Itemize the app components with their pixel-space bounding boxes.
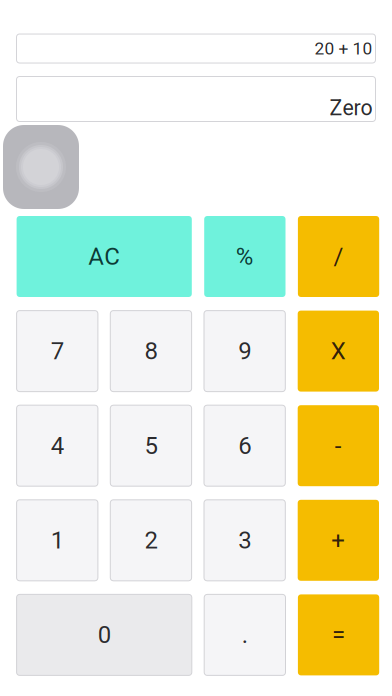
staticText: 20 + 10 xyxy=(314,38,372,59)
staticText: % xyxy=(236,242,254,270)
staticText: = xyxy=(332,621,345,649)
staticText: 8 xyxy=(144,337,157,365)
button[interactable]: AC xyxy=(17,216,192,297)
button[interactable]: . xyxy=(204,594,285,675)
button[interactable]: 5 xyxy=(110,405,192,486)
staticText: 7 xyxy=(51,337,64,365)
staticText: 9 xyxy=(238,337,251,365)
staticText: / xyxy=(334,242,344,270)
staticText: - xyxy=(335,432,342,460)
staticText: 3 xyxy=(238,526,251,554)
button[interactable]: = xyxy=(298,594,379,675)
staticText: 4 xyxy=(51,432,64,460)
button[interactable]: % xyxy=(204,216,285,297)
staticText: X xyxy=(331,337,346,365)
button[interactable]: 0 xyxy=(17,594,192,675)
button[interactable]: 20 + 10 xyxy=(16,34,375,63)
button[interactable]: 9 xyxy=(204,311,285,392)
staticText: + xyxy=(331,526,345,554)
button[interactable]: + xyxy=(298,500,379,581)
button[interactable]: - xyxy=(298,405,379,486)
button[interactable]: 8 xyxy=(110,311,192,392)
button[interactable]: X xyxy=(298,311,379,392)
button[interactable]: 2 xyxy=(110,500,192,581)
staticText: AC xyxy=(88,242,120,270)
staticText: Zero xyxy=(329,95,372,120)
button[interactable]: 4 xyxy=(17,405,98,486)
button[interactable]: / xyxy=(298,216,379,297)
button[interactable]: 6 xyxy=(204,405,285,486)
staticText: 5 xyxy=(144,432,157,460)
staticText: . xyxy=(242,621,248,649)
staticText: 1 xyxy=(51,526,64,554)
button[interactable]: 3 xyxy=(204,500,285,581)
button[interactable]: 7 xyxy=(17,311,98,392)
button[interactable]: 1 xyxy=(17,500,98,581)
staticText: 0 xyxy=(98,621,111,649)
button[interactable]: Image xyxy=(3,125,79,209)
staticText: 6 xyxy=(238,432,251,460)
button[interactable]: Zero xyxy=(16,76,375,121)
staticText: 2 xyxy=(144,526,157,554)
